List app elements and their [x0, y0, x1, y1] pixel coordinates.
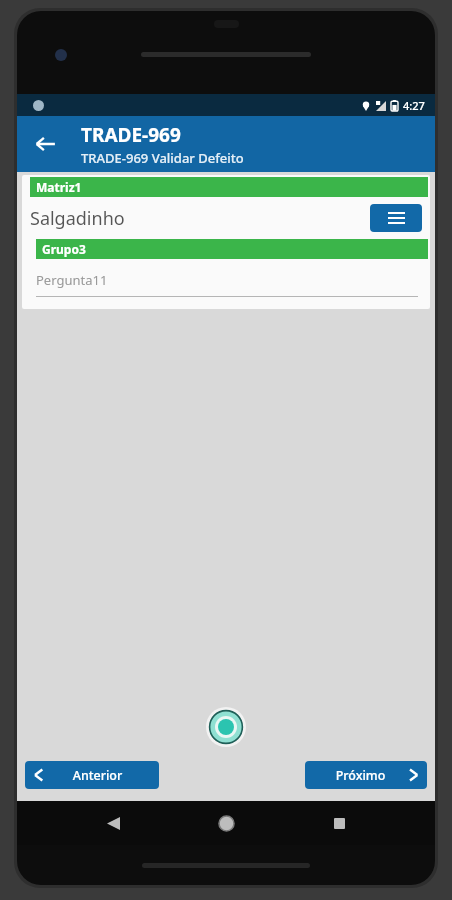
staticText: Anterior — [44, 767, 151, 784]
staticText: Matriz1 — [36, 179, 82, 195]
button[interactable]: Próximo — [305, 761, 427, 789]
staticText: Próximo — [313, 767, 408, 784]
button[interactable] — [204, 705, 248, 749]
staticText: Grupo3 — [42, 241, 86, 257]
staticText: TRADE-969 Validar Defeito — [81, 149, 244, 167]
staticText: Pergunta11 — [36, 271, 108, 289]
button[interactable]: Back — [23, 122, 67, 166]
staticText: TRADE-969 — [81, 122, 181, 148]
button[interactable]: Matriz1 — [30, 177, 428, 197]
button[interactable]: Pergunta11 — [36, 271, 418, 297]
staticText: Salgadinho — [30, 206, 370, 231]
button[interactable]: Home — [209, 806, 243, 840]
button[interactable]: Menu — [370, 204, 422, 232]
button[interactable]: Back — [96, 806, 130, 840]
button[interactable]: Anterior — [25, 761, 159, 789]
button[interactable]: Grupo3 — [36, 239, 428, 259]
button[interactable]: Recent apps — [322, 806, 356, 840]
staticText: 4:27 — [403, 98, 425, 113]
